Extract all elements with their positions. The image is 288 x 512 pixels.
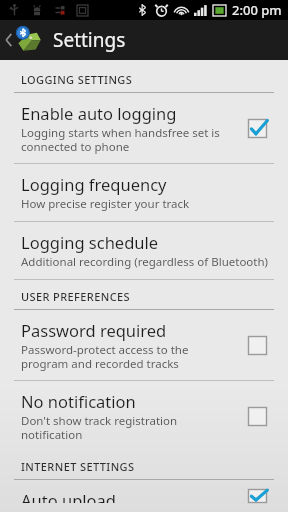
staticText: Password required	[21, 319, 167, 341]
button[interactable]: Logging schedule	[0, 222, 288, 279]
staticText: Don't show track registration notificati…	[21, 413, 178, 442]
button[interactable]: No notification	[240, 399, 274, 433]
staticText: Logging starts when handsfree set is con…	[21, 125, 220, 154]
staticText: LOGGING SETTINGS	[21, 72, 133, 87]
staticText: INTERNET SETTINGS	[21, 459, 135, 474]
button[interactable]: Logging frequency	[0, 164, 288, 221]
staticText: No notification	[21, 390, 136, 412]
staticText: Settings	[53, 27, 126, 53]
staticText: Logging frequency	[21, 173, 167, 195]
staticText: How precise register your track	[21, 196, 190, 212]
staticText: 2:00 pm	[232, 1, 282, 19]
staticText: USER PREFERENCES	[21, 289, 131, 304]
button[interactable]: Navigate up to Settings	[0, 20, 288, 60]
staticText: Logging schedule	[21, 231, 159, 253]
button[interactable]: Password required	[0, 310, 288, 380]
button[interactable]: Auto upload	[240, 489, 274, 503]
button[interactable]: Password required	[240, 328, 274, 362]
staticText: Password-protect access to the program a…	[21, 342, 189, 371]
button[interactable]: Enable auto logging	[240, 111, 274, 145]
staticText: Additional recording (regardless of Blue…	[21, 254, 269, 270]
staticText: Enable auto logging	[21, 102, 177, 124]
button[interactable]: Enable auto logging	[0, 93, 288, 163]
staticText: Auto upload	[21, 489, 116, 503]
button[interactable]: Auto upload	[0, 480, 288, 512]
button[interactable]: No notification	[0, 381, 288, 451]
